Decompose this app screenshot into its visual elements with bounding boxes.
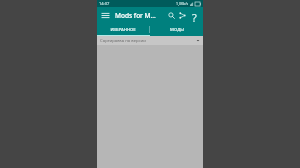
button[interactable]: Search <box>166 10 177 21</box>
staticText: 1,0Kb/s <box>176 1 189 6</box>
staticText: Сортировка по версии <box>100 38 196 44</box>
staticText: 14:07 <box>99 1 110 6</box>
staticText: МОДЫ <box>170 27 184 33</box>
button[interactable]: МОДЫ <box>150 24 203 35</box>
button[interactable]: Help <box>188 10 200 22</box>
button[interactable]: ИЗБРАННОЕ <box>97 24 149 35</box>
staticText: ИЗБРАННОЕ <box>110 27 136 33</box>
button[interactable]: Сортировка по версии <box>97 36 203 45</box>
button[interactable]: Share <box>177 10 188 21</box>
staticText: Mods for M... <box>115 11 166 20</box>
button[interactable]: Open navigation drawer <box>100 10 111 21</box>
staticText: ? <box>192 10 197 22</box>
